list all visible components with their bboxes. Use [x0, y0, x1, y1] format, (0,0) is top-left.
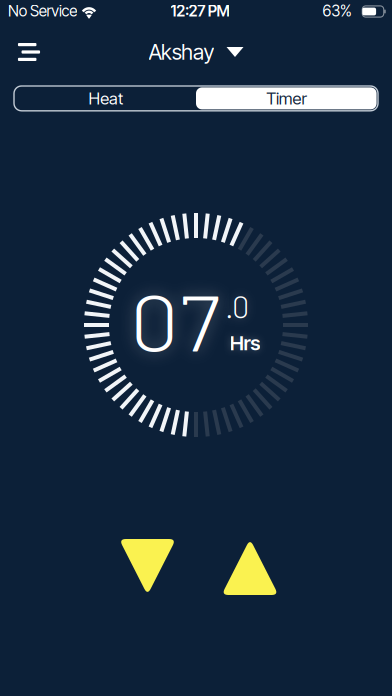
- button[interactable]: Timer: [196, 87, 377, 109]
- staticText: 12:27 PM: [170, 2, 229, 20]
- staticText: 63%: [323, 2, 352, 20]
- staticText: Timer: [266, 88, 306, 108]
- staticText: .0: [225, 288, 249, 324]
- button[interactable]: Heat: [15, 87, 196, 109]
- staticText: Hrs: [230, 331, 260, 355]
- staticText: Heat: [88, 88, 123, 108]
- staticText: 07: [135, 274, 215, 366]
- button[interactable]: Menu: [6, 29, 52, 75]
- staticText: Akshay: [148, 39, 214, 65]
- staticText: No Service: [8, 2, 77, 20]
- button[interactable]: Akshay: [148, 29, 243, 75]
